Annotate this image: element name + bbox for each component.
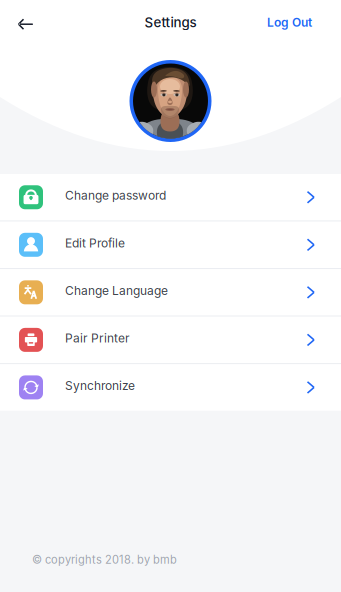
button[interactable]: Synchronize — [0, 364, 341, 411]
staticText: Pair Printer — [65, 331, 130, 345]
staticText: © copyrights 2018. by bmb — [32, 553, 177, 566]
button[interactable]: Log Out — [255, 0, 341, 45]
button[interactable]: Edit Profile — [0, 221, 341, 268]
staticText: Log Out — [267, 15, 312, 30]
button[interactable]: Back — [0, 0, 45, 45]
button[interactable]: Change Language — [0, 269, 341, 316]
button[interactable]: Change password — [0, 174, 341, 220]
staticText: Synchronize — [65, 378, 135, 393]
staticText: Edit Profile — [65, 236, 125, 250]
button[interactable]: Pair Printer — [0, 317, 341, 363]
staticText: Change Language — [65, 283, 168, 298]
staticText: Change password — [65, 188, 166, 203]
staticText: Settings — [144, 14, 196, 30]
